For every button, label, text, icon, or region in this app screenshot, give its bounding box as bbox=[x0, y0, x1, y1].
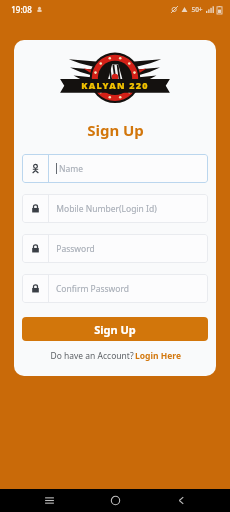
staticText: Mobile Number(Login Id) bbox=[56, 203, 157, 215]
button[interactable]: Name bbox=[22, 154, 208, 183]
staticText: Do have an Account? bbox=[49, 350, 135, 362]
button[interactable]: Sign Up bbox=[22, 317, 208, 341]
staticText: Sign Up bbox=[87, 120, 144, 140]
staticText: Name bbox=[59, 163, 83, 175]
button[interactable]: Do have an Account? bbox=[49, 350, 181, 362]
staticText: Confirm Password bbox=[56, 283, 129, 295]
staticText: Password bbox=[56, 243, 95, 255]
staticText: KALYAN 220 bbox=[81, 79, 149, 91]
button[interactable]: Password bbox=[22, 234, 208, 263]
button[interactable]: Back bbox=[164, 489, 198, 512]
staticText: 50+ bbox=[191, 5, 203, 14]
button[interactable]: Confirm Password bbox=[22, 274, 208, 303]
button[interactable]: Mobile Number(Login Id) bbox=[22, 194, 208, 223]
staticText: Login Here bbox=[135, 350, 181, 362]
staticText: Sign Up bbox=[94, 322, 136, 337]
staticText: 19:08 bbox=[11, 4, 32, 15]
button[interactable]: Home bbox=[98, 489, 132, 512]
button[interactable]: Recent apps bbox=[32, 489, 66, 512]
